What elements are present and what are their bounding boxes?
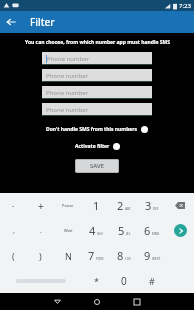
staticText: 0 xyxy=(121,274,127,288)
staticText: WXYZ xyxy=(152,257,161,261)
staticText: PQRS xyxy=(96,257,104,261)
staticText: Wait xyxy=(64,228,73,233)
staticText: * xyxy=(94,275,99,287)
button[interactable]: Don't handle SMS from this numbers xyxy=(42,124,152,135)
button[interactable]: Wait xyxy=(54,218,82,243)
button[interactable]: ( xyxy=(0,243,27,268)
staticText: Phone number xyxy=(46,72,89,80)
button[interactable]: Phone number xyxy=(42,69,152,82)
staticText: 1 xyxy=(93,198,100,213)
staticText: 6 xyxy=(144,223,151,238)
button[interactable]: # xyxy=(138,268,166,293)
staticText: 7 xyxy=(88,248,95,263)
button[interactable]: 7 xyxy=(82,243,110,268)
staticText: Don't handle SMS from this numbers xyxy=(46,126,138,133)
button[interactable]: 3 xyxy=(138,193,166,218)
staticText: 9 xyxy=(144,248,151,263)
staticText: MNO xyxy=(152,232,160,236)
button[interactable]: 9 xyxy=(138,243,166,268)
button[interactable]: 4 xyxy=(82,218,110,243)
button[interactable]: Recents xyxy=(117,293,157,310)
button[interactable]: 0 xyxy=(110,268,138,293)
button[interactable]: Pause xyxy=(54,193,82,218)
button[interactable]: 1 xyxy=(82,193,110,218)
button[interactable]: Backspace xyxy=(166,193,194,218)
button[interactable]: Home xyxy=(77,293,117,310)
button[interactable]: Phone number xyxy=(42,103,152,116)
staticText: 4 xyxy=(89,223,96,238)
staticText: - xyxy=(12,201,15,211)
button[interactable]: * xyxy=(82,268,110,293)
button[interactable]: 8 xyxy=(110,243,138,268)
button[interactable]: Enter xyxy=(166,218,194,243)
button[interactable]: ) xyxy=(27,243,54,268)
button[interactable]: Activate filter xyxy=(71,141,124,152)
button[interactable]: Back xyxy=(0,11,22,33)
staticText: Filter xyxy=(30,15,55,29)
staticText: , xyxy=(13,226,15,236)
staticText: Phone number xyxy=(46,89,89,97)
staticText: TUV xyxy=(125,257,131,261)
staticText: Phone number xyxy=(46,106,89,114)
button[interactable]: SAVE xyxy=(75,159,119,173)
staticText: . xyxy=(40,226,42,236)
staticText: 3 xyxy=(145,198,152,213)
button[interactable]: Phone number xyxy=(42,86,152,99)
staticText: Pause xyxy=(62,203,74,208)
staticText: 2 xyxy=(117,198,124,213)
staticText: 7:23 xyxy=(179,2,191,10)
staticText: Phone number xyxy=(47,55,90,63)
button[interactable]: + xyxy=(27,193,54,218)
staticText: ) xyxy=(39,250,42,262)
staticText: DEF xyxy=(153,207,159,211)
staticText: 8 xyxy=(117,248,124,263)
button[interactable]: , xyxy=(0,218,27,243)
staticText: ( xyxy=(12,250,15,262)
staticText: ABC xyxy=(125,207,131,211)
button[interactable]: Phone number xyxy=(42,52,152,65)
button[interactable]: - xyxy=(0,193,27,218)
staticText: + xyxy=(38,199,44,213)
staticText: SAVE xyxy=(90,162,105,170)
staticText: GHI xyxy=(97,232,103,236)
button[interactable]: 2 xyxy=(110,193,138,218)
staticText: # xyxy=(149,275,155,287)
staticText: You can choose, from which number app mu… xyxy=(25,39,170,46)
staticText: Activate filter xyxy=(75,143,110,150)
staticText: N xyxy=(65,250,72,262)
staticText: JKL xyxy=(126,232,131,236)
button[interactable]: Back xyxy=(37,293,77,310)
button[interactable]: N xyxy=(54,243,82,268)
staticText: 5 xyxy=(118,223,125,238)
button[interactable]: Space xyxy=(0,268,82,293)
button[interactable]: 5 xyxy=(110,218,138,243)
button[interactable]: 6 xyxy=(138,218,166,243)
